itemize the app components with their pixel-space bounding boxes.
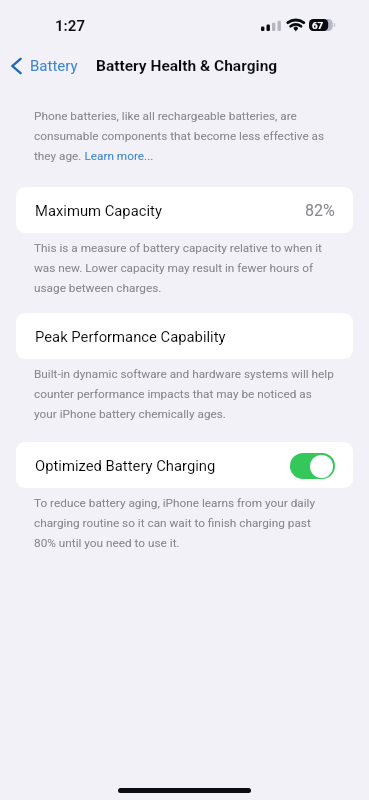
other: Battery 67 percent [309,19,335,31]
staticText: 1:27 [55,17,86,35]
button[interactable]: Optimized Battery Charging toggle [290,453,335,479]
staticText: Built-in dynamic software and hardware s… [34,367,334,420]
staticText: Phone batteries, like all rechargeable b… [34,109,334,162]
button[interactable]: Optimized Battery Charging [16,442,353,488]
other: Cellular signal [261,19,281,31]
button[interactable]: Back [9,57,78,75]
staticText: Peak Performance Capability [35,328,226,345]
other: Wi-Fi [287,18,305,31]
other: Back [9,57,22,75]
staticText: 82% [305,201,335,220]
button[interactable]: Peak Performance Capability [16,313,353,359]
button[interactable]: Maximum Capacity [16,187,353,233]
staticText: This is a measure of battery capacity re… [34,241,334,294]
staticText: To reduce battery aging, iPhone learns f… [34,496,334,549]
staticText: Optimized Battery Charging [35,457,216,474]
staticText: Battery Health & Charging [96,57,278,75]
staticText: 67 [312,20,324,31]
staticText: Maximum Capacity [35,202,162,219]
staticText: Battery [30,57,78,75]
